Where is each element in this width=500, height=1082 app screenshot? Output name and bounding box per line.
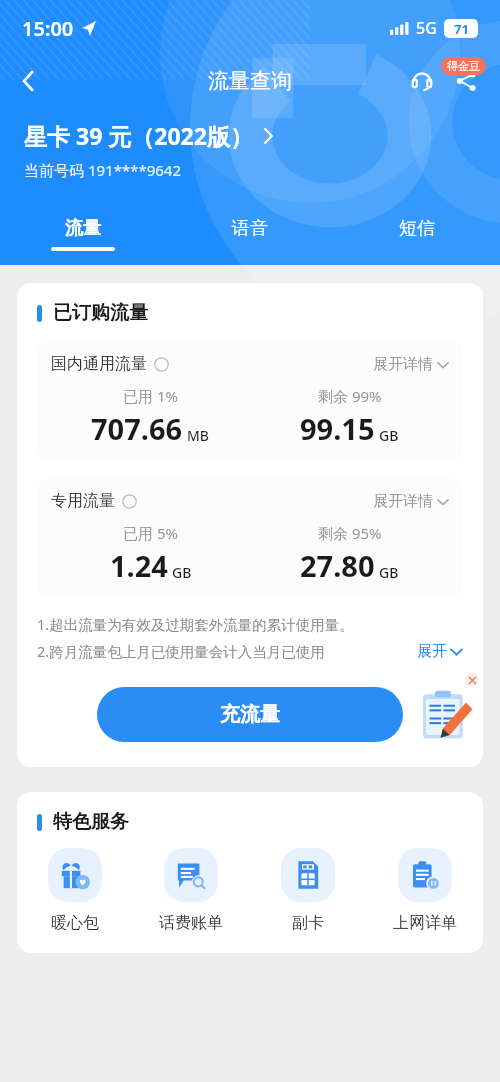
staticText: 剩余 99% [318, 386, 382, 406]
staticText: 流量查询 [208, 68, 292, 94]
button[interactable]: 副卡 [249, 848, 366, 933]
button[interactable]: 意见反馈 [415, 685, 473, 743]
staticText: 5G [416, 17, 437, 39]
staticText: 专用流量 [51, 491, 115, 511]
staticText: GB [379, 563, 399, 582]
staticText: 暖心包 [51, 913, 99, 933]
staticText: 99.15 [300, 409, 375, 448]
button[interactable]: 展开详情 [373, 492, 449, 511]
button[interactable]: 展开详情 [373, 355, 449, 374]
button[interactable]: 语音 [166, 213, 333, 255]
button[interactable]: 短信 [333, 213, 500, 255]
staticText: 特色服务 [53, 810, 129, 834]
staticText: 707.66 [91, 409, 183, 448]
button[interactable]: 话费账单 [133, 848, 249, 933]
staticText: 充流量 [220, 702, 280, 727]
staticText: 已用 5% [123, 523, 178, 543]
staticText: 话费账单 [159, 913, 223, 933]
staticText: 得金豆 [447, 59, 480, 73]
staticText: MB [187, 426, 210, 445]
staticText: 1.24 [110, 546, 168, 585]
staticText: 剩余 95% [318, 523, 382, 543]
button[interactable]: 分享 [446, 61, 486, 101]
staticText: 流量 [65, 217, 101, 240]
staticText: 国内通用流量 [51, 354, 147, 374]
staticText: GB [379, 426, 399, 445]
button[interactable]: 暖心包 [17, 848, 133, 933]
button[interactable]: 客服 [402, 61, 442, 101]
button[interactable]: 流量 [0, 213, 166, 255]
button[interactable]: 充流量 [97, 687, 403, 742]
staticText: 展开详情 [373, 492, 433, 511]
staticText: 1.超出流量为有效及过期套外流量的累计使用量。 [37, 614, 354, 634]
staticText: 展开 [417, 642, 447, 661]
staticText: 展开详情 [373, 355, 433, 374]
staticText: 已订购流量 [53, 301, 148, 325]
button[interactable]: 展开 [417, 642, 463, 661]
staticText: 上网详单 [393, 913, 457, 933]
staticText: 71 [454, 20, 469, 38]
button[interactable]: 星卡 39 元（2022版） [24, 120, 275, 151]
staticText: 副卡 [292, 913, 324, 933]
staticText: GB [172, 563, 192, 582]
staticText: 2.跨月流量包上月已使用量会计入当月已使用 [37, 641, 325, 661]
staticText: 语音 [232, 217, 268, 240]
button[interactable]: 返回 [8, 60, 50, 102]
button[interactable]: 上网详单 [366, 848, 483, 933]
staticText: 已用 1% [123, 386, 178, 406]
staticText: 27.80 [300, 546, 375, 585]
staticText: 15:00 [22, 15, 74, 42]
staticText: 当前号码 191****9642 [24, 160, 182, 180]
staticText: 短信 [399, 217, 435, 240]
staticText: 星卡 39 元（2022版） [24, 120, 253, 151]
